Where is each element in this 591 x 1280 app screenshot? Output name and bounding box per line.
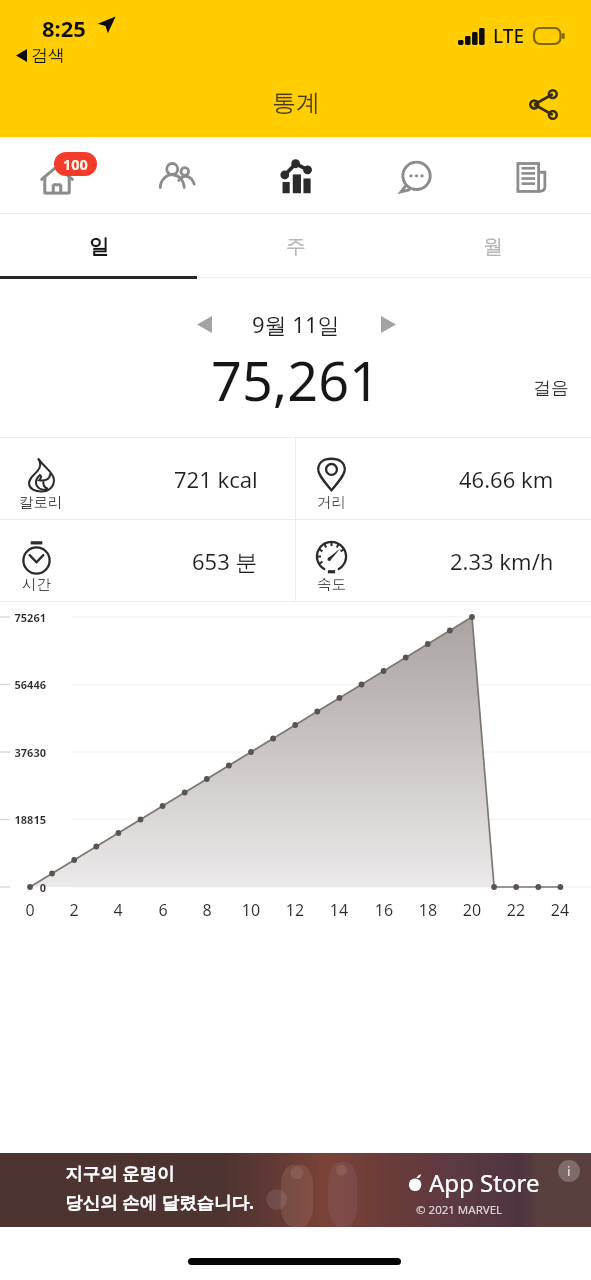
staticText: 12 [275, 899, 315, 921]
button[interactable]: 속도 [295, 520, 591, 601]
staticText: © 2021 MARVEL [416, 1202, 503, 1218]
staticText: 통계 [272, 88, 320, 118]
staticText: 시간 [22, 575, 51, 593]
staticText: 721 kcal [174, 464, 258, 494]
staticText: 2.33 km/h [450, 546, 554, 576]
staticText: 37630 [0, 745, 46, 760]
staticText: 10 [231, 899, 271, 921]
button[interactable]: 검색 [16, 45, 65, 66]
staticText: 6 [143, 899, 183, 921]
button[interactable]: Chats [355, 137, 473, 213]
staticText: 8 [187, 899, 227, 921]
staticText: 주 [286, 234, 306, 259]
staticText: 0 [0, 880, 46, 895]
staticText: 46.66 km [459, 464, 554, 494]
staticText: 일 [89, 234, 109, 259]
staticText: 속도 [317, 575, 346, 593]
staticText: 4 [98, 899, 138, 921]
staticText: 지구의 운명이 [65, 1161, 175, 1185]
staticText: 18 [408, 899, 448, 921]
staticText: 걸음 [533, 377, 569, 400]
staticText: 2 [54, 899, 94, 921]
staticText: 653 분 [192, 546, 258, 576]
staticText: 14 [319, 899, 359, 921]
button[interactable]: 월 [394, 214, 591, 279]
button[interactable]: 주 [197, 214, 394, 279]
staticText: 칼로리 [19, 493, 63, 511]
staticText: 20 [452, 899, 492, 921]
staticText: App Store [429, 1166, 540, 1199]
button[interactable]: News [473, 137, 591, 213]
staticText: LTE [493, 23, 525, 49]
button[interactable]: Home [0, 137, 119, 213]
staticText: 18815 [0, 812, 46, 827]
staticText: 8:25 [42, 13, 86, 43]
button[interactable]: Statistics [237, 137, 355, 213]
staticText: 월 [483, 234, 503, 259]
staticText: 24 [540, 899, 580, 921]
button[interactable]: Ad information [558, 1160, 580, 1182]
staticText: 100 [63, 154, 88, 174]
button[interactable]: 일 [0, 214, 197, 279]
button[interactable]: Next day [366, 302, 410, 346]
button[interactable]: 거리 [295, 438, 591, 519]
staticText: 거리 [317, 493, 346, 511]
staticText: 9월 11일 [252, 309, 340, 339]
button[interactable]: 칼로리 [0, 438, 295, 519]
staticText: 당신의 손에 달렸습니다. [65, 1190, 255, 1214]
staticText: 56446 [0, 677, 46, 692]
staticText: 0 [10, 899, 50, 921]
staticText: 75,261 [211, 343, 380, 415]
staticText: 검색 [31, 45, 65, 66]
button[interactable]: Previous day [182, 302, 226, 346]
button[interactable]: 시간 [0, 520, 295, 601]
button[interactable]: Friends [119, 137, 237, 213]
button[interactable]: Share [521, 82, 565, 126]
staticText: 75261 [0, 610, 46, 625]
staticText: i [567, 1162, 571, 1180]
staticText: 16 [364, 899, 404, 921]
button[interactable]: 지구의 운명이 [0, 1153, 591, 1227]
staticText: 22 [496, 899, 536, 921]
